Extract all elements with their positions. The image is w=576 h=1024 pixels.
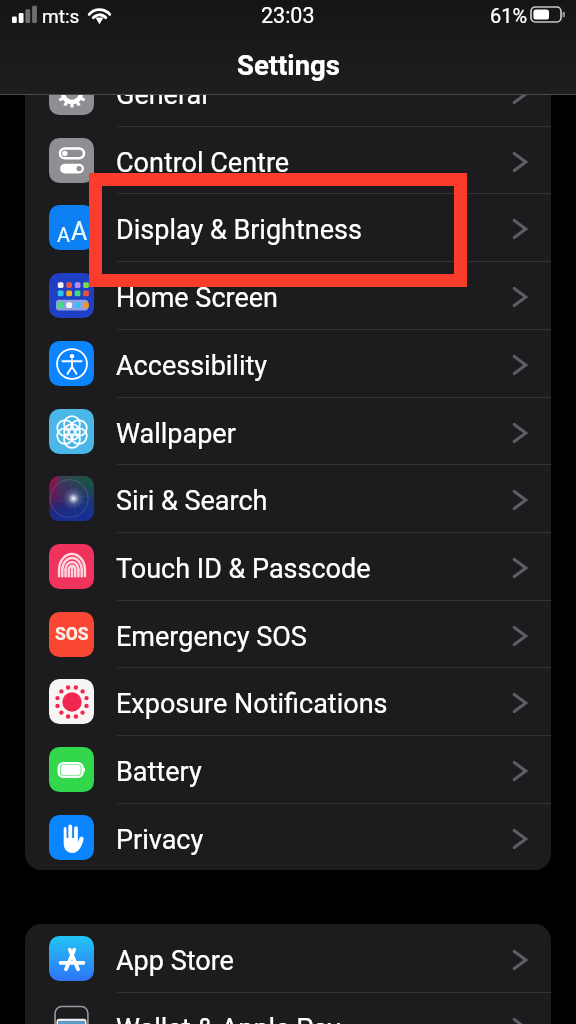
staticText: Home Screen bbox=[116, 282, 278, 314]
button[interactable]: Wallet & Apple Pay bbox=[25, 992, 551, 1024]
staticText: 61% bbox=[490, 4, 528, 27]
staticText: Display & Brightness bbox=[116, 214, 362, 246]
staticText: mt:s bbox=[42, 5, 80, 27]
staticText: General bbox=[116, 79, 208, 111]
staticText: A bbox=[71, 217, 88, 246]
staticText: Exposure Notifications bbox=[116, 688, 388, 720]
staticText: Privacy bbox=[116, 824, 204, 856]
button[interactable]: Control Centre bbox=[25, 126, 551, 194]
staticText: Wallet & Apple Pay bbox=[116, 1013, 341, 1024]
staticText: Wallpaper bbox=[116, 418, 236, 450]
staticText: Control Centre bbox=[116, 147, 290, 179]
staticText: 23:03 bbox=[261, 3, 315, 28]
staticText: Accessibility bbox=[116, 350, 268, 382]
button[interactable]: Privacy bbox=[25, 803, 551, 870]
button[interactable]: Home Screen bbox=[25, 261, 551, 329]
staticText: Siri & Search bbox=[116, 485, 268, 517]
staticText: A bbox=[57, 223, 71, 246]
button[interactable]: Wallpaper bbox=[25, 397, 551, 465]
staticText: SOS bbox=[55, 624, 89, 645]
button[interactable]: General bbox=[25, 58, 551, 126]
button[interactable]: Battery bbox=[25, 735, 551, 803]
staticText: Touch ID & Passcode bbox=[116, 553, 371, 585]
button[interactable]: Accessibility bbox=[25, 329, 551, 397]
button[interactable]: Touch ID & Passcode bbox=[25, 532, 551, 600]
button[interactable]: Siri & Search bbox=[25, 464, 551, 532]
button[interactable]: SOS bbox=[25, 600, 551, 668]
staticText: Battery bbox=[116, 756, 202, 788]
button[interactable]: App Store bbox=[25, 924, 551, 992]
button[interactable]: Exposure Notifications bbox=[25, 667, 551, 735]
button[interactable]: A bbox=[25, 193, 551, 261]
staticText: Emergency SOS bbox=[116, 621, 307, 653]
staticText: Settings bbox=[237, 49, 340, 81]
staticText: App Store bbox=[116, 945, 234, 977]
